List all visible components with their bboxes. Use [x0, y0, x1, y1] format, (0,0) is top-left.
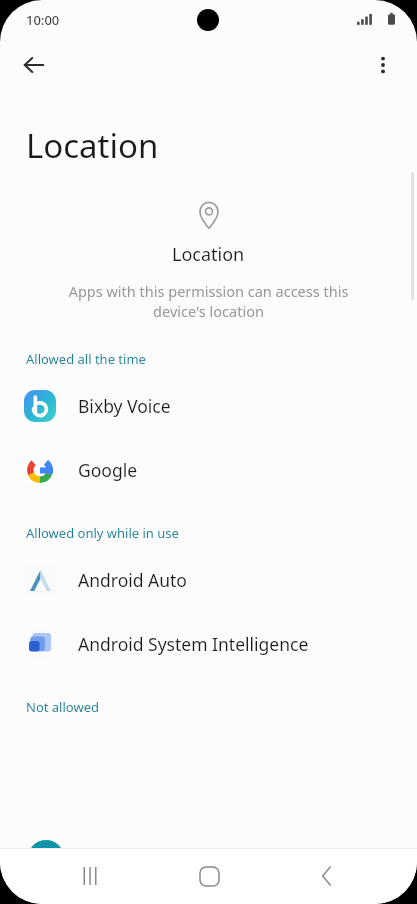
button[interactable]: Android System Intelligence [0, 612, 417, 676]
staticText: Location [172, 242, 245, 267]
staticText: Allowed all the time [26, 350, 146, 368]
button[interactable]: Back [298, 848, 356, 904]
staticText: 10:00 [26, 11, 60, 29]
staticText: Allowed only while in use [26, 524, 179, 542]
staticText: Not allowed [26, 698, 99, 716]
staticText: Android System Intelligence [78, 632, 309, 656]
staticText: Location [26, 123, 159, 168]
staticText: Apps with this permission can access thi… [62, 281, 355, 322]
staticText: Google [78, 458, 138, 482]
staticText: Bixby Voice [78, 394, 171, 418]
button[interactable]: Bixby Voice [0, 374, 417, 438]
button[interactable]: Android Auto [0, 548, 417, 612]
button[interactable]: Back [12, 43, 56, 87]
staticText: Android Auto [78, 568, 187, 592]
button[interactable]: Home [180, 848, 238, 904]
button[interactable]: More options [361, 43, 405, 87]
button[interactable]: Recents [61, 848, 119, 904]
button[interactable]: Google [0, 438, 417, 502]
